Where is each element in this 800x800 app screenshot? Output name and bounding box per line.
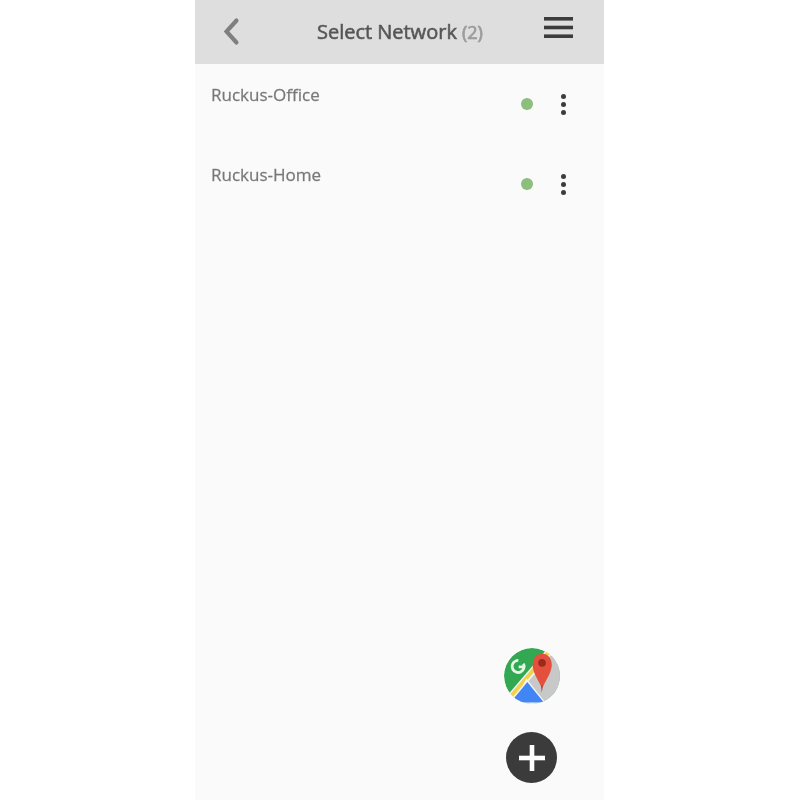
button[interactable]: Back [211,11,251,51]
button[interactable]: More options [547,168,579,200]
button[interactable]: More options [547,88,579,120]
staticText: Select Network [317,18,457,45]
button[interactable]: Add network [506,732,557,783]
staticText: (2) [462,20,483,45]
button[interactable]: Ruckus-Office [195,64,604,144]
button[interactable]: Ruckus-Home [195,144,604,224]
staticText: Ruckus-Office [211,83,320,106]
staticText: Select Network [317,18,457,45]
staticText: Ruckus-Home [211,163,322,186]
staticText: Ruckus-Office [211,83,320,106]
button[interactable]: Menu [538,7,578,47]
button[interactable]: Open Google Maps [504,648,560,704]
staticText: Ruckus-Home [211,163,322,186]
staticText: (2) [462,20,483,45]
